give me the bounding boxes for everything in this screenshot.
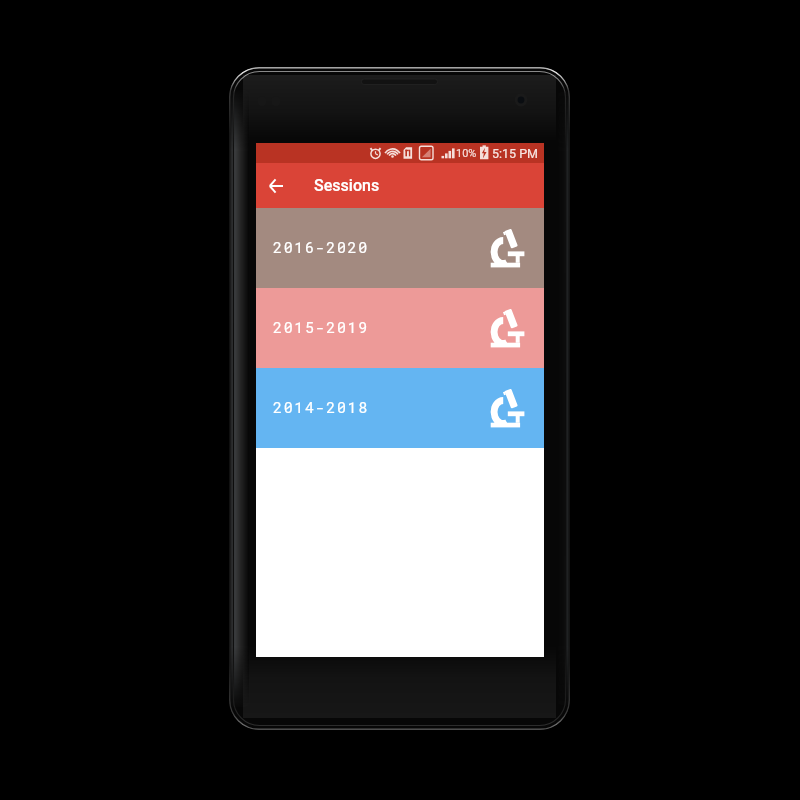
button[interactable]: 2014-2018 — [256, 368, 544, 448]
staticText: 2016-2020 — [273, 237, 369, 257]
button[interactable]: 2015-2019 — [256, 288, 544, 368]
staticText: 5:15 PM — [492, 146, 539, 161]
staticText: 2015-2019 — [273, 317, 369, 337]
staticText: 2014-2018 — [273, 397, 369, 417]
staticText: Sessions — [314, 176, 380, 195]
button[interactable]: Back — [261, 171, 291, 201]
button[interactable]: 2016-2020 — [256, 208, 544, 288]
staticText: 10% — [456, 147, 477, 160]
